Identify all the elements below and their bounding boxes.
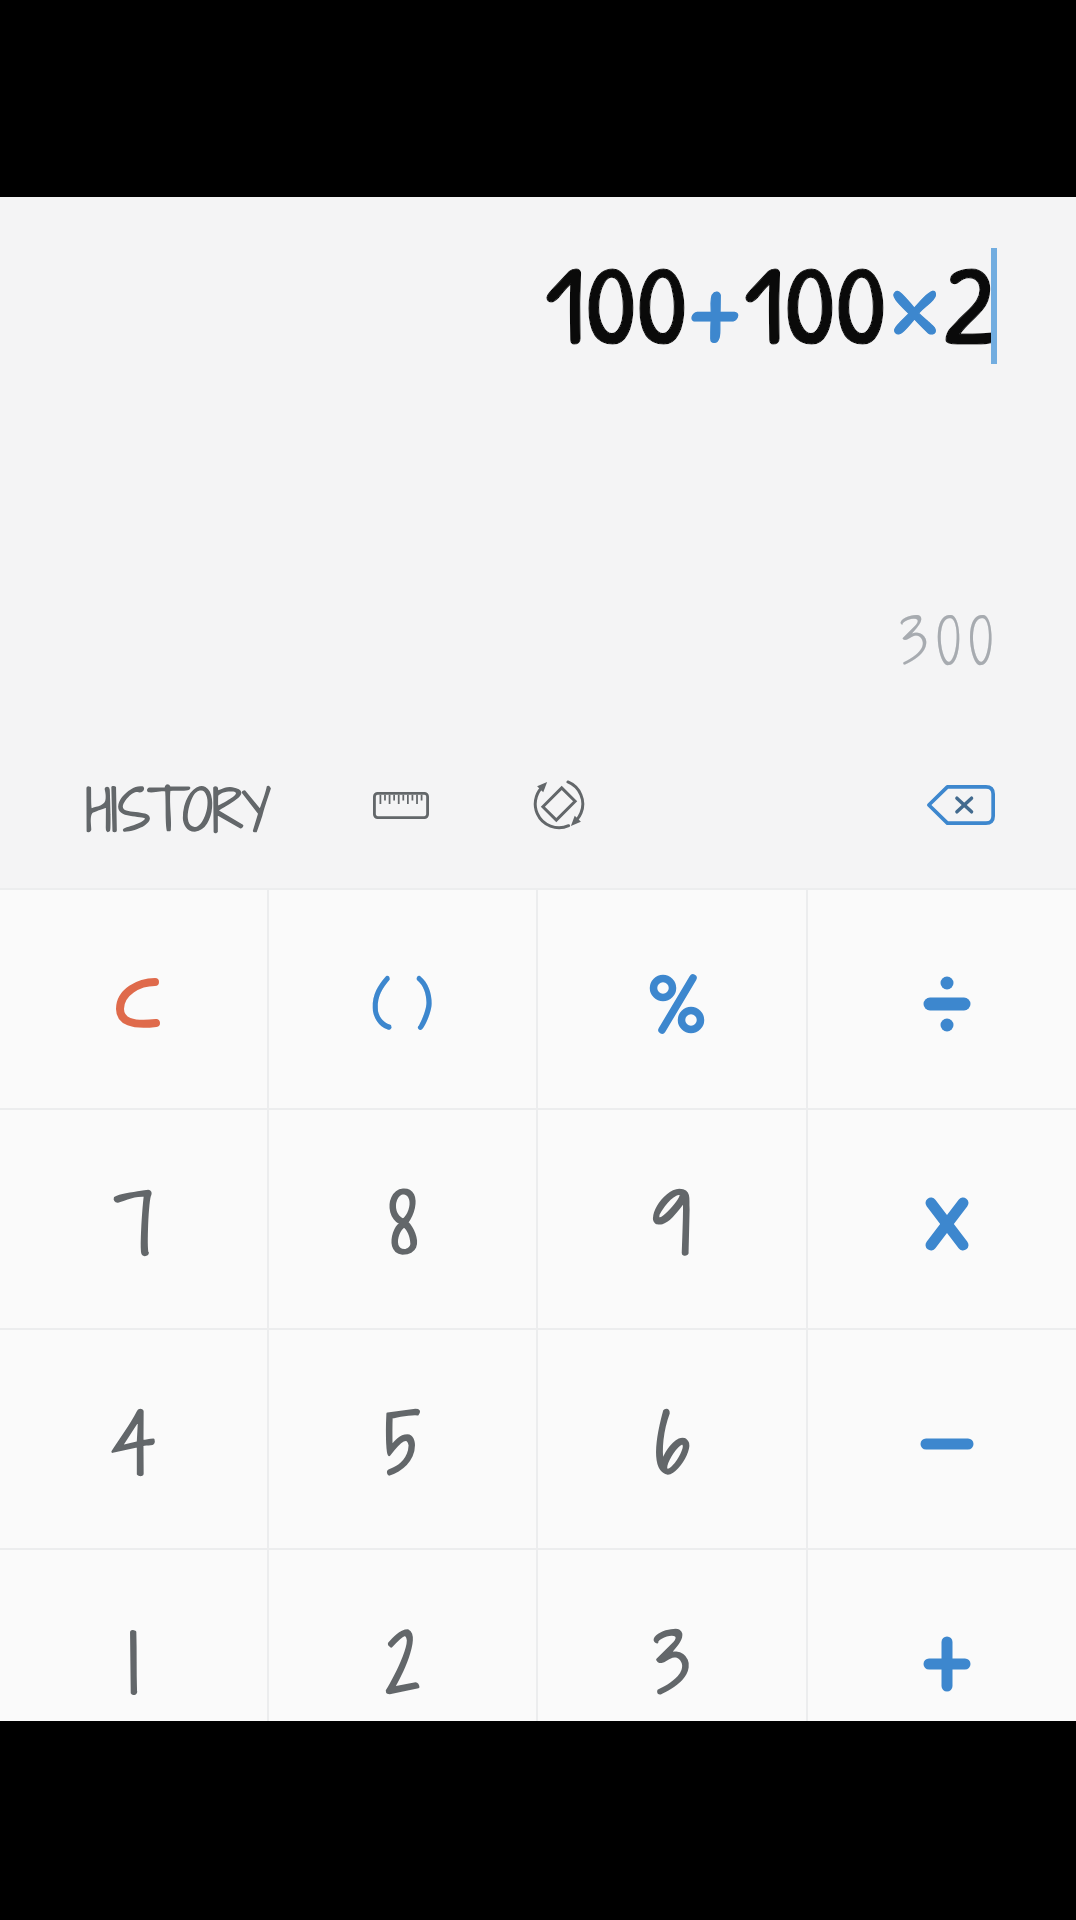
staticText: 5	[385, 1388, 421, 1500]
button[interactable]: 1	[0, 1550, 267, 1721]
staticText: 100	[743, 225, 887, 379]
staticText: HISTORY	[86, 771, 271, 849]
staticText: +	[688, 225, 743, 379]
button[interactable]: 2	[269, 1550, 536, 1721]
staticText: 6	[655, 1388, 690, 1500]
staticText: 6	[655, 1388, 690, 1500]
button[interactable]	[808, 890, 1076, 1110]
staticText: 5	[385, 1388, 421, 1500]
button[interactable]: Unit converter	[346, 750, 456, 860]
staticText: ( )	[373, 965, 432, 1043]
staticText: 4	[112, 1388, 156, 1500]
button[interactable]: Backspace	[901, 745, 1021, 865]
staticText: HISTORY	[86, 771, 271, 849]
button[interactable]: 3	[538, 1550, 806, 1721]
staticText: 8	[389, 1168, 417, 1280]
staticText: 7	[114, 1168, 154, 1280]
staticText: 7	[114, 1168, 154, 1280]
staticText: 100	[743, 225, 887, 379]
staticText: ×	[887, 225, 943, 379]
button[interactable]	[808, 1550, 1076, 1721]
button[interactable]	[0, 890, 267, 1110]
staticText: 2	[386, 1608, 420, 1720]
button[interactable]: 6	[538, 1330, 806, 1550]
staticText: 3	[654, 1608, 690, 1720]
button[interactable]: 8	[269, 1110, 536, 1330]
staticText: ×	[887, 225, 943, 379]
staticText: ( )	[373, 965, 432, 1043]
button[interactable]: ( )	[269, 890, 536, 1110]
staticText: +	[688, 225, 743, 379]
button[interactable]	[808, 1330, 1076, 1550]
button[interactable]: 9	[538, 1110, 806, 1330]
button[interactable]	[808, 1110, 1076, 1330]
staticText: 2	[943, 225, 997, 379]
staticText: 2	[943, 225, 997, 379]
button[interactable]: 7	[0, 1110, 267, 1330]
button[interactable]: Rotate screen	[504, 749, 614, 859]
button[interactable]: HISTORY	[86, 764, 271, 856]
staticText: 3	[654, 1608, 690, 1720]
staticText: 1	[128, 1608, 139, 1720]
staticText: 1	[128, 1608, 139, 1720]
button[interactable]: 4	[0, 1330, 267, 1550]
staticText: 100	[544, 225, 688, 379]
staticText: 9	[653, 1168, 691, 1280]
button[interactable]	[538, 890, 806, 1110]
staticText: 100	[544, 225, 688, 379]
button[interactable]: 5	[269, 1330, 536, 1550]
staticText: 4	[112, 1388, 156, 1500]
staticText: 8	[389, 1168, 417, 1280]
staticText: 300	[900, 598, 1002, 685]
staticText: 2	[386, 1608, 420, 1720]
staticText: 9	[653, 1168, 691, 1280]
